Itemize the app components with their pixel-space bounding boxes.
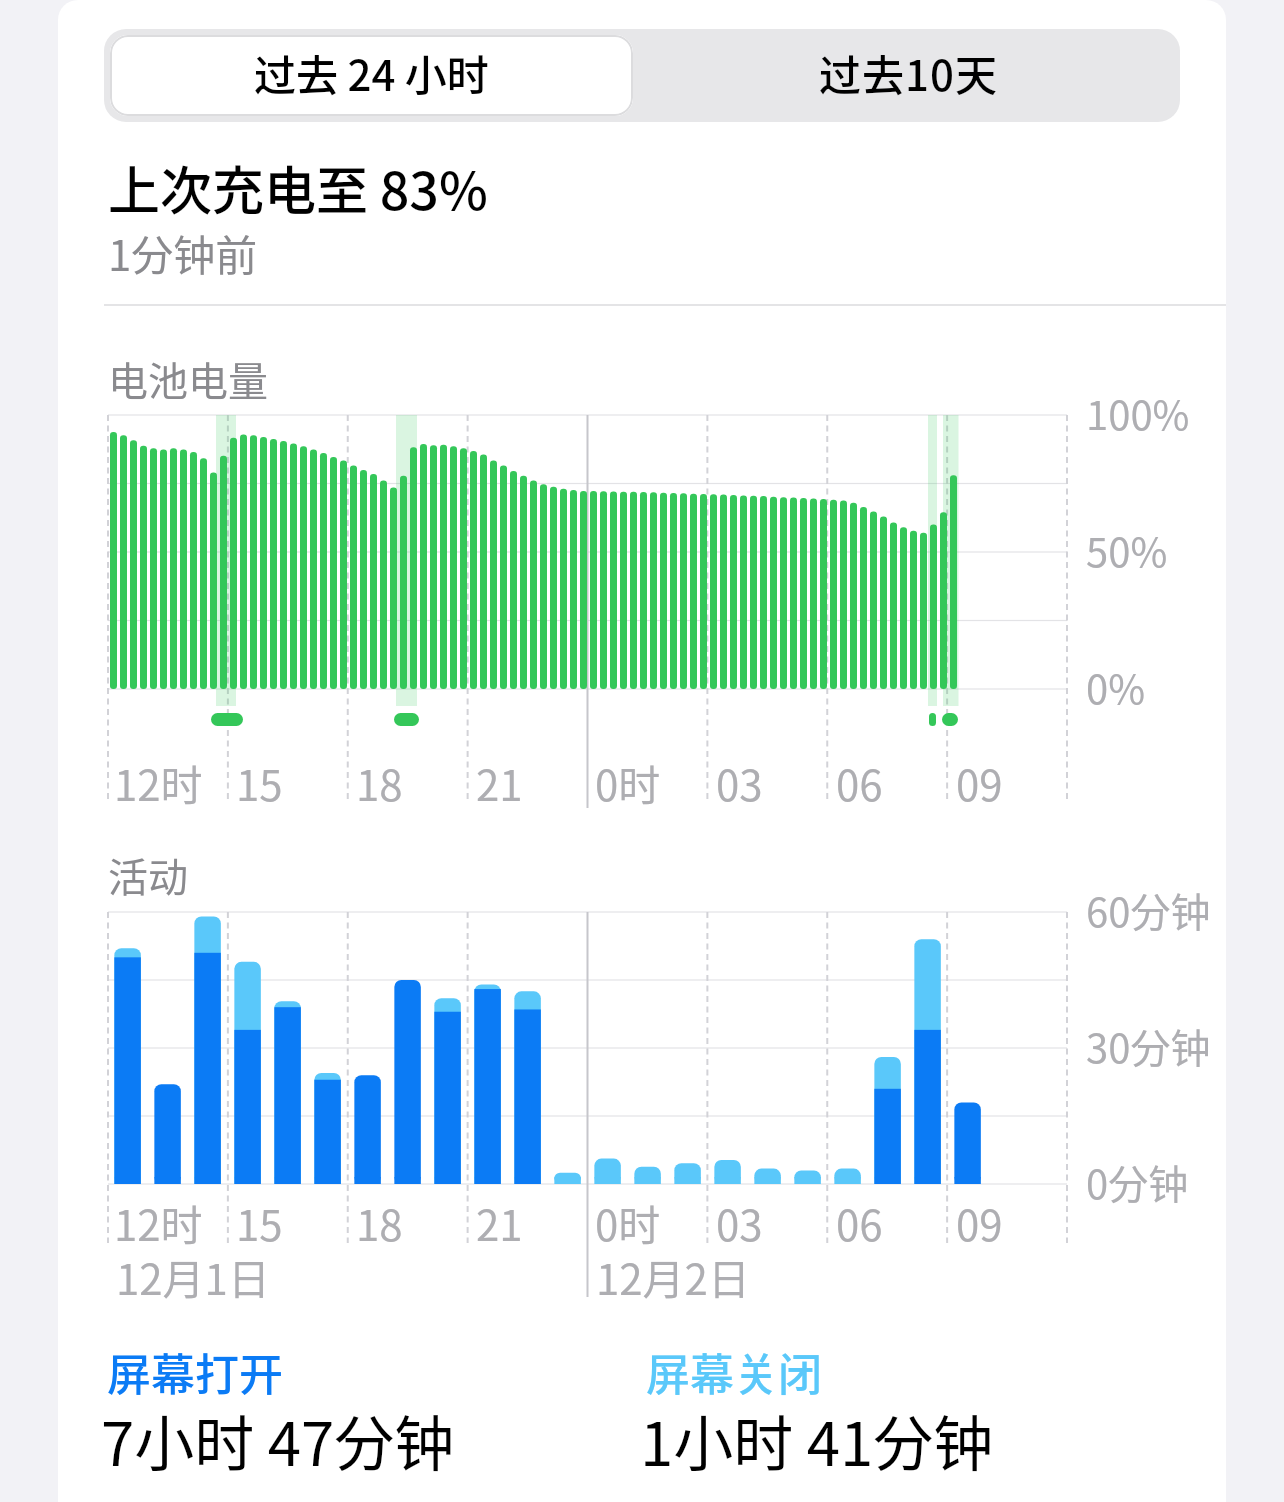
staticText: 15 xyxy=(236,1192,283,1253)
staticText: 21 xyxy=(476,752,523,813)
staticText: 30分钟 xyxy=(1086,1017,1211,1075)
staticText: 电池电量 xyxy=(108,350,268,408)
staticText: 过去 24 小时 xyxy=(254,42,489,103)
staticText: 屏幕打开 xyxy=(107,1340,283,1404)
button[interactable]: 过去 24 小时 xyxy=(110,35,633,116)
staticText: 0% xyxy=(1086,658,1146,716)
staticText: 0时 xyxy=(595,1192,661,1253)
staticText: 12月2日 xyxy=(596,1246,750,1307)
staticText: 06 xyxy=(836,752,883,813)
staticText: 21 xyxy=(476,1192,523,1253)
staticText: 50% xyxy=(1086,521,1168,579)
staticText: 15 xyxy=(236,752,283,813)
staticText: 活动 xyxy=(108,846,188,904)
staticText: 12月1日 xyxy=(116,1246,270,1307)
staticText: 上次充电至 83% xyxy=(108,150,488,225)
staticText: 12时 xyxy=(114,752,203,813)
staticText: 0时 xyxy=(595,752,661,813)
staticText: 09 xyxy=(956,1192,1003,1253)
staticText: 过去10天 xyxy=(819,42,998,103)
staticText: 18 xyxy=(356,752,403,813)
staticText: 60分钟 xyxy=(1086,881,1211,939)
staticText: 18 xyxy=(356,1192,403,1253)
staticText: 06 xyxy=(836,1192,883,1253)
staticText: 7小时 47分钟 xyxy=(101,1396,455,1483)
staticText: 0分钟 xyxy=(1086,1153,1189,1211)
staticText: 1分钟前 xyxy=(108,222,258,283)
button[interactable]: 过去10天 xyxy=(636,29,1180,122)
staticText: 03 xyxy=(716,1192,763,1253)
staticText: 100% xyxy=(1086,384,1190,442)
staticText: 屏幕关闭 xyxy=(646,1340,822,1404)
staticText: 03 xyxy=(716,752,763,813)
staticText: 12时 xyxy=(114,1192,203,1253)
staticText: 1小时 41分钟 xyxy=(640,1396,994,1483)
staticText: 09 xyxy=(956,752,1003,813)
